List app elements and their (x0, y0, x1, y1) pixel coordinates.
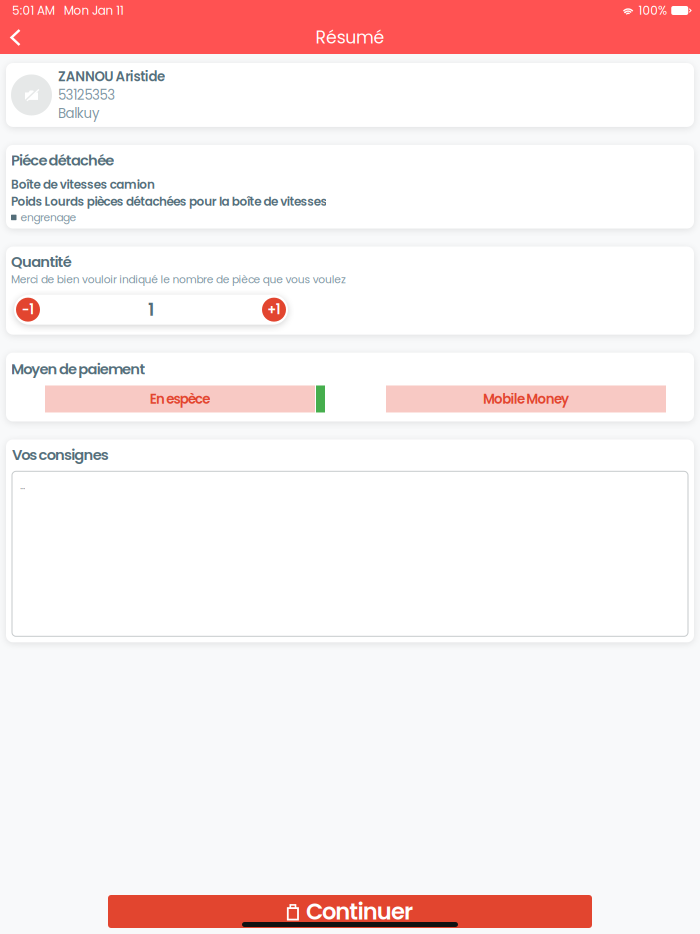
button[interactable]: Continuer (108, 895, 592, 928)
staticText: 100% (639, 4, 667, 17)
staticText: Continuer (306, 898, 413, 924)
staticText: Mobile Money (483, 391, 569, 407)
staticText: −1 (22, 302, 34, 317)
staticText: En espèce (150, 391, 210, 407)
button[interactable]: −1 (16, 298, 40, 322)
staticText: engrenage (20, 211, 76, 223)
staticText: Merci de bien vouloir indiqué le nombre … (11, 273, 346, 286)
staticText: Boîte de vitesses camion (11, 178, 155, 192)
staticText: 5:01 AM (12, 4, 55, 17)
staticText: +1 (267, 302, 281, 317)
staticText: ZANNOU Aristide (58, 69, 165, 84)
staticText: Résumé (315, 28, 384, 47)
staticText: 1 (148, 300, 154, 320)
staticText: Moyen de paiement (11, 361, 145, 377)
staticText: Balkuy (58, 106, 100, 121)
button[interactable]: Back (0, 21, 33, 53)
staticText: Vos consignes (12, 446, 109, 463)
button[interactable]: En espèce (45, 385, 325, 412)
staticText: Piéce détachée (11, 152, 114, 169)
staticText: Quantité (11, 254, 72, 270)
staticText: Poids Lourds pièces détachées pour la bo… (11, 194, 327, 208)
staticText: Mon Jan 11 (64, 4, 124, 17)
button[interactable]: Mobile Money (386, 385, 666, 412)
button[interactable]: +1 (262, 298, 286, 322)
staticText: 53125353 (58, 87, 115, 103)
staticText: ... (20, 479, 25, 491)
